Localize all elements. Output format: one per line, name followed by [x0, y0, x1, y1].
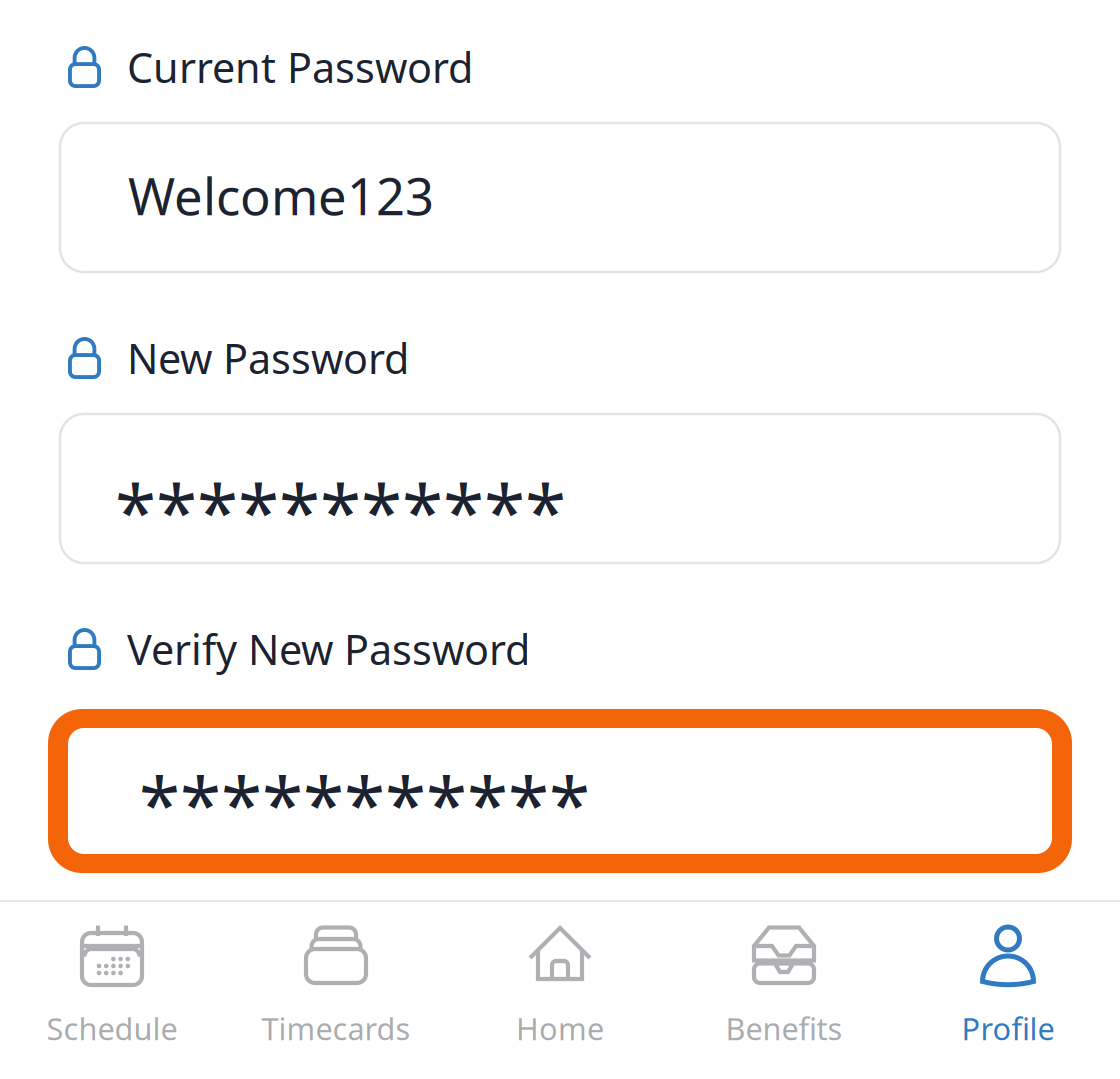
staticText: Current Password — [127, 40, 473, 94]
staticText: Benefits — [725, 1008, 842, 1049]
button[interactable]: Benefits — [672, 902, 896, 1079]
button[interactable]: Profile — [896, 902, 1120, 1079]
button[interactable]: *********** — [48, 709, 1072, 873]
button[interactable]: *********** — [60, 414, 1060, 563]
staticText: Home — [516, 1008, 604, 1049]
staticText: Welcome123 — [128, 162, 434, 229]
staticText: Timecards — [261, 1008, 410, 1049]
staticText: Schedule — [46, 1008, 177, 1049]
button[interactable]: Timecards — [224, 902, 448, 1079]
staticText: Verify New Password — [127, 622, 530, 676]
staticText: *********** — [139, 753, 590, 853]
button[interactable]: Schedule — [0, 902, 224, 1079]
staticText: New Password — [127, 331, 409, 385]
button[interactable]: Home — [448, 902, 672, 1079]
button[interactable]: Welcome123 — [60, 123, 1060, 272]
staticText: Profile — [961, 1008, 1054, 1049]
staticText: *********** — [115, 461, 566, 560]
